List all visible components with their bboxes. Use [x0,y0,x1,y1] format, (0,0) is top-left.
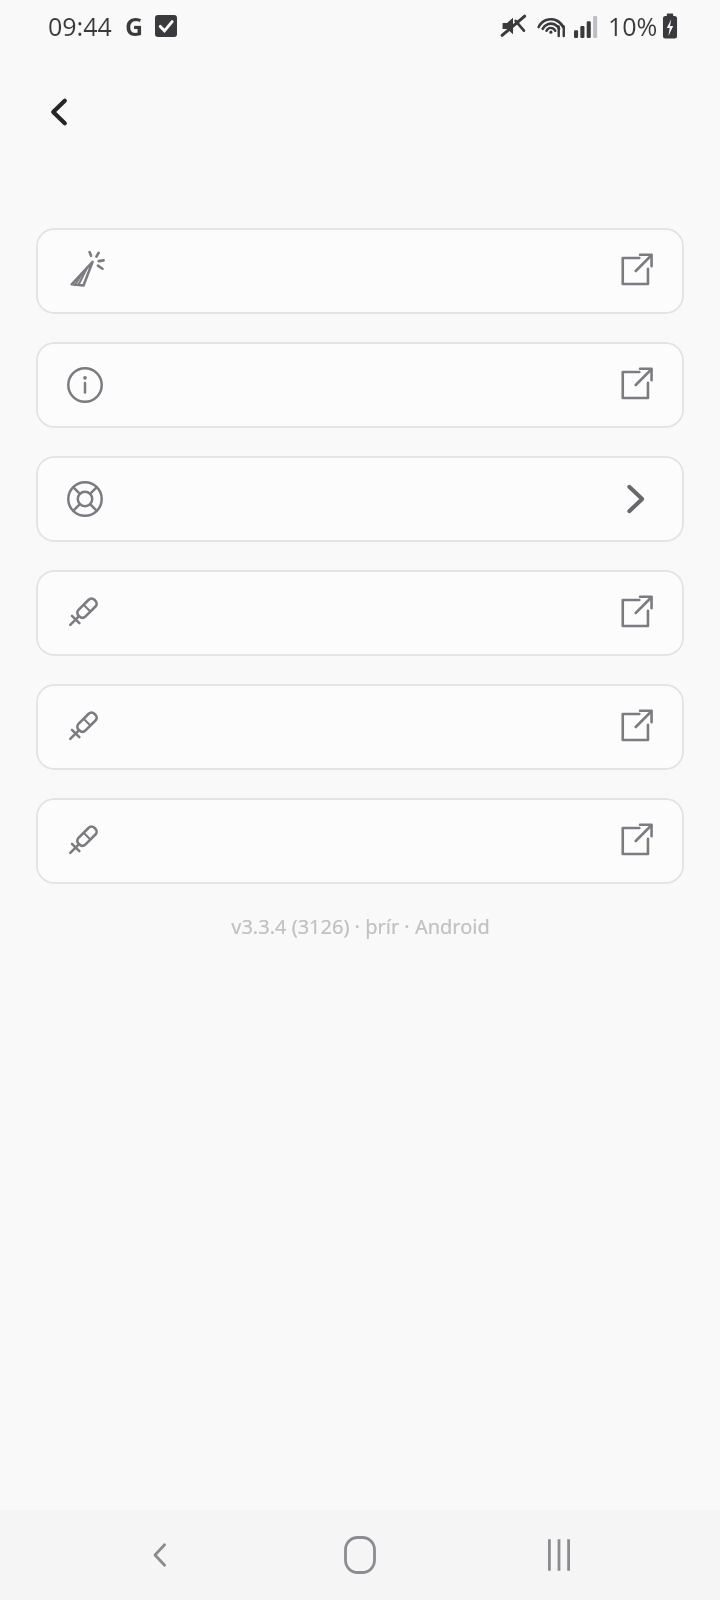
button[interactable]: Release notes [36,228,684,314]
button[interactable]: Back [26,78,94,146]
staticText: v3.3.4 (3126) · þrír · Android [231,913,490,940]
button[interactable]: Home [322,1517,398,1593]
button[interactable]: Back [123,1517,199,1593]
button[interactable]: Support [36,456,684,542]
staticText: 09:44 [48,9,112,43]
button[interactable]: Licences [36,798,684,884]
button[interactable]: Terms of service [36,570,684,656]
staticText: G [125,9,144,43]
staticText: 10% [608,9,658,43]
button[interactable]: About [36,342,684,428]
button[interactable]: Recent apps [521,1517,597,1593]
button[interactable]: Privacy policy [36,684,684,770]
